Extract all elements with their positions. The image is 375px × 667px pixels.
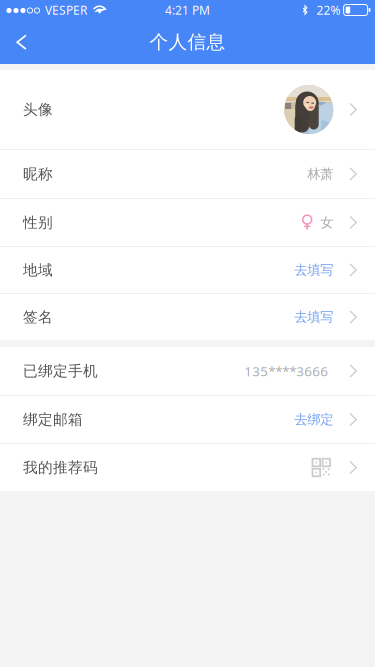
button[interactable]: 昵称 (0, 150, 375, 198)
staticText: 昵称 (23, 165, 53, 183)
staticText: 我的推荐码 (23, 458, 98, 476)
staticText: 去绑定 (294, 411, 333, 428)
staticText: 绑定邮箱 (23, 410, 83, 428)
button[interactable]: 签名 (0, 294, 375, 340)
button[interactable]: 我的推荐码 (0, 444, 375, 491)
staticText: 头像 (23, 100, 53, 118)
staticText: 22% (317, 2, 341, 18)
button[interactable]: 绑定邮箱 (0, 396, 375, 443)
button[interactable]: 已绑定手机 (0, 347, 375, 395)
button[interactable]: Back (0, 21, 43, 63)
staticText: 4:21 PM (165, 2, 210, 18)
staticText: 去填写 (294, 262, 333, 278)
button[interactable]: 地域 (0, 247, 375, 293)
staticText: 已绑定手机 (23, 362, 98, 380)
button[interactable]: 性别 (0, 199, 375, 246)
staticText: 签名 (23, 308, 53, 326)
staticText: VESPER (45, 2, 87, 18)
staticText: 性别 (23, 213, 53, 231)
staticText: 135****3666 (244, 362, 328, 380)
staticText: 去填写 (294, 309, 333, 325)
staticText: 个人信息 (149, 30, 225, 53)
staticText: 林萧 (307, 166, 333, 182)
button[interactable]: 头像 (0, 70, 375, 149)
staticText: 女 (320, 214, 333, 231)
staticText: 地域 (23, 261, 53, 279)
